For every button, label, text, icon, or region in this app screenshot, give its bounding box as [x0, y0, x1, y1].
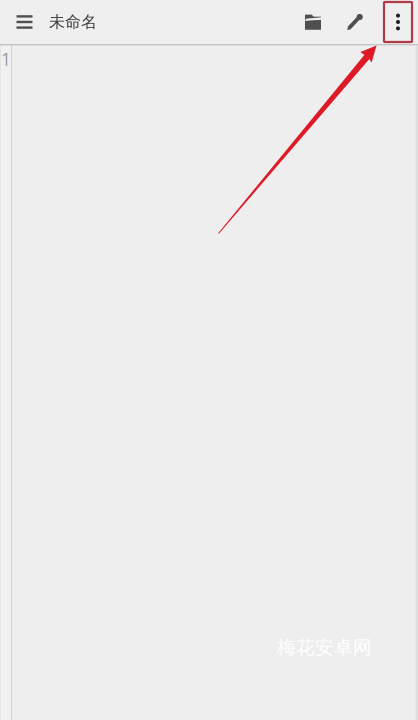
- staticText: 1: [1, 48, 11, 71]
- button[interactable]: 未命名: [49, 0, 107, 44]
- staticText: 梅花安卓网: [277, 636, 372, 659]
- staticText: 未命名: [49, 12, 97, 32]
- button[interactable]: More options: [380, 2, 418, 42]
- button[interactable]: Open file: [296, 0, 338, 44]
- button[interactable]: Edit: [338, 0, 380, 44]
- button[interactable]: Menu: [0, 0, 49, 44]
